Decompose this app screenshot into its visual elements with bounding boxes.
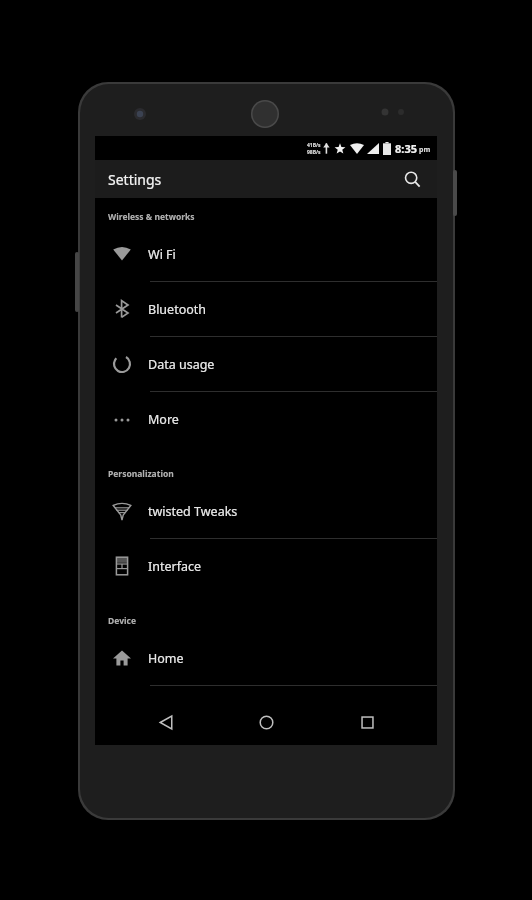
staticText: More: [148, 411, 179, 428]
button[interactable]: Recent apps: [337, 700, 397, 745]
button[interactable]: Search: [395, 162, 429, 196]
button[interactable]: Data usage: [95, 337, 437, 391]
button[interactable]: Home: [95, 631, 437, 685]
button[interactable]: Home: [236, 700, 296, 745]
staticText: 41B/s: [307, 142, 321, 149]
staticText: 8:35: [395, 141, 417, 156]
staticText: Data usage: [148, 356, 215, 373]
staticText: Interface: [148, 558, 202, 575]
staticText: Wireless & networks: [108, 211, 195, 223]
staticText: Bluetooth: [148, 301, 207, 318]
staticText: twisted Tweaks: [148, 503, 238, 520]
staticText: Personalization: [108, 468, 174, 480]
button[interactable]: Wi Fi: [95, 227, 437, 281]
staticText: 98B/s: [307, 149, 321, 156]
staticText: Wi Fi: [148, 246, 176, 263]
button[interactable]: Back: [136, 700, 196, 745]
staticText: Device: [108, 615, 136, 627]
staticText: pm: [419, 145, 431, 155]
staticText: Settings: [108, 170, 162, 189]
button[interactable]: More: [95, 392, 437, 446]
button[interactable]: Bluetooth: [95, 282, 437, 336]
staticText: Home: [148, 650, 184, 667]
button[interactable]: Interface: [95, 539, 437, 593]
button[interactable]: twisted Tweaks: [95, 484, 437, 538]
